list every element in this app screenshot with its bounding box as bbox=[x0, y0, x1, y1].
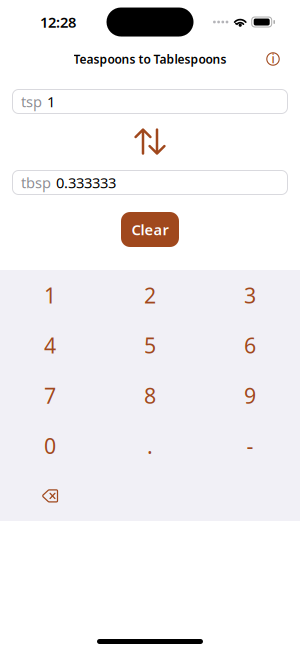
staticText: 4 bbox=[44, 331, 56, 359]
button[interactable]: Info bbox=[262, 48, 284, 70]
staticText: - bbox=[246, 431, 253, 460]
button[interactable]: 7 bbox=[0, 370, 100, 421]
button[interactable]: . bbox=[100, 421, 200, 471]
staticText: 3 bbox=[244, 281, 256, 309]
staticText: 1 bbox=[47, 92, 55, 111]
button[interactable]: 0 bbox=[0, 421, 100, 471]
staticText: tbsp bbox=[21, 173, 51, 192]
staticText: 12:28 bbox=[40, 12, 76, 32]
button[interactable]: 9 bbox=[200, 370, 300, 421]
staticText: 6 bbox=[244, 331, 256, 359]
staticText: Teaspoons to Tablespoons bbox=[73, 51, 226, 67]
staticText: 1 bbox=[44, 281, 56, 309]
staticText: 7 bbox=[44, 381, 56, 410]
button[interactable]: 3 bbox=[200, 270, 300, 320]
button[interactable]: - bbox=[200, 421, 300, 471]
staticText: i bbox=[271, 50, 274, 66]
staticText: 0.333333 bbox=[56, 173, 116, 192]
staticText: . bbox=[147, 431, 153, 460]
staticText: 2 bbox=[144, 281, 156, 309]
staticText: 8 bbox=[144, 381, 156, 410]
button[interactable]: Clear bbox=[121, 212, 179, 247]
staticText: 9 bbox=[244, 381, 256, 410]
button[interactable]: Delete bbox=[0, 471, 100, 521]
staticText: tsp bbox=[21, 92, 42, 111]
staticText: Clear bbox=[131, 220, 168, 239]
button[interactable]: 8 bbox=[100, 370, 200, 421]
button[interactable]: 1 bbox=[0, 270, 100, 320]
staticText: 5 bbox=[144, 331, 156, 359]
button[interactable]: Swap units bbox=[134, 124, 166, 159]
button[interactable]: 5 bbox=[100, 320, 200, 370]
staticText: 0 bbox=[44, 431, 56, 460]
button[interactable]: 6 bbox=[200, 320, 300, 370]
button[interactable]: 2 bbox=[100, 270, 200, 320]
button[interactable]: 4 bbox=[0, 320, 100, 370]
